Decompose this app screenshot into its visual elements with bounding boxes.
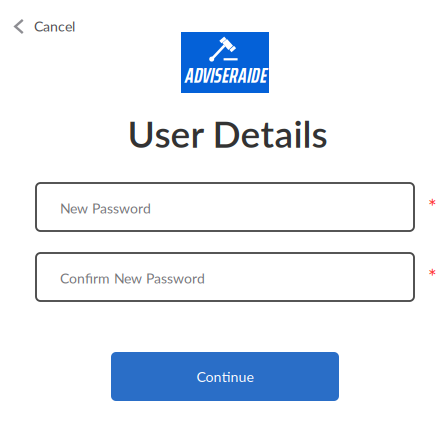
staticText: ADVISERAIDE <box>184 59 266 92</box>
staticText: Confirm New Password <box>60 270 205 286</box>
staticText: Cancel <box>34 17 75 34</box>
button[interactable]: Cancel <box>0 8 104 45</box>
staticText: * <box>428 264 437 289</box>
staticText: New Password <box>60 200 151 216</box>
staticText: * <box>428 194 437 219</box>
button[interactable]: Continue <box>111 352 339 401</box>
staticText: User Details <box>127 111 327 156</box>
staticText: Continue <box>196 368 253 385</box>
